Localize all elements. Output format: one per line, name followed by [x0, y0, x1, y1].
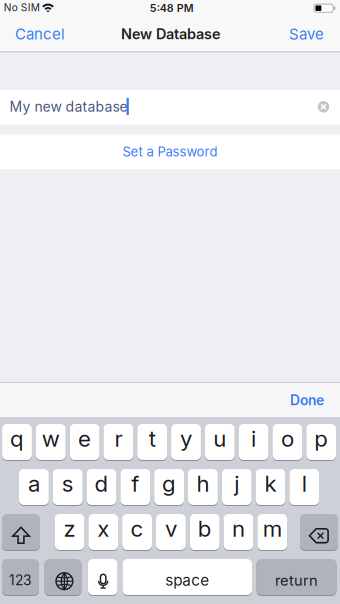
staticText: return — [275, 571, 318, 589]
staticText: Save — [289, 25, 324, 43]
button[interactable]: 123 — [2, 558, 39, 596]
button[interactable]: v — [156, 513, 186, 551]
button[interactable]: e — [70, 423, 99, 461]
staticText: My new database — [10, 98, 128, 115]
button[interactable]: Delete — [300, 513, 338, 551]
staticText: j — [234, 470, 239, 497]
button[interactable]: i — [239, 423, 268, 461]
staticText: r — [114, 425, 122, 452]
button[interactable]: s — [53, 468, 83, 506]
staticText: x — [97, 515, 109, 542]
button[interactable]: space — [122, 558, 252, 596]
button[interactable]: c — [122, 513, 152, 551]
staticText: y — [180, 425, 192, 452]
staticText: 123 — [9, 572, 32, 589]
button[interactable]: Cancel — [15, 25, 65, 43]
button[interactable]: p — [306, 423, 336, 461]
staticText: t — [149, 425, 156, 452]
button[interactable]: r — [103, 423, 133, 461]
button[interactable]: Done — [290, 392, 324, 409]
button[interactable]: o — [272, 423, 302, 461]
button[interactable]: l — [289, 468, 319, 506]
button[interactable]: g — [154, 468, 184, 506]
staticText: q — [10, 425, 24, 452]
staticText: m — [263, 515, 282, 542]
staticText: u — [213, 425, 226, 452]
staticText: space — [165, 571, 209, 589]
staticText: 5:48 PM — [150, 2, 194, 15]
staticText: v — [165, 515, 177, 542]
staticText: g — [162, 470, 176, 497]
staticText: d — [94, 470, 108, 497]
button[interactable]: m — [257, 513, 287, 551]
staticText: No SIM — [4, 1, 40, 14]
staticText: c — [131, 515, 144, 542]
button[interactable]: return — [256, 558, 336, 596]
button[interactable]: z — [55, 513, 84, 551]
button[interactable]: Set a Password — [0, 134, 340, 169]
staticText: b — [198, 515, 212, 542]
button[interactable]: k — [256, 468, 285, 506]
staticText: a — [28, 470, 40, 497]
button[interactable]: u — [205, 423, 235, 461]
staticText: h — [196, 470, 209, 497]
button[interactable]: f — [120, 468, 150, 506]
staticText: p — [314, 425, 328, 452]
staticText: w — [42, 425, 60, 452]
button[interactable]: b — [190, 513, 220, 551]
button[interactable]: x — [88, 513, 118, 551]
staticText: i — [251, 425, 256, 452]
staticText: n — [232, 515, 245, 542]
button[interactable]: Dictate — [88, 558, 117, 596]
button[interactable]: q — [2, 423, 32, 461]
staticText: Set a Password — [122, 144, 217, 160]
button[interactable]: a — [19, 468, 49, 506]
staticText: f — [131, 470, 139, 497]
button[interactable]: h — [188, 468, 218, 506]
staticText: l — [302, 470, 307, 497]
button[interactable]: Database name — [0, 90, 340, 124]
button[interactable]: Shift — [2, 513, 40, 551]
staticText: Cancel — [15, 25, 65, 43]
button[interactable]: t — [137, 423, 167, 461]
staticText: o — [281, 425, 294, 452]
button[interactable]: w — [36, 423, 66, 461]
button[interactable]: Next keyboard — [44, 558, 81, 596]
staticText: s — [62, 470, 74, 497]
button[interactable]: j — [222, 468, 252, 506]
button[interactable]: Save — [289, 25, 324, 43]
button[interactable]: y — [171, 423, 201, 461]
staticText: e — [78, 425, 91, 452]
button[interactable]: d — [87, 468, 116, 506]
button[interactable]: Clear text — [318, 101, 329, 112]
staticText: z — [63, 515, 75, 542]
staticText: New Database — [121, 25, 221, 43]
button[interactable]: n — [224, 513, 253, 551]
staticText: k — [264, 470, 276, 497]
staticText: Done — [290, 392, 324, 409]
